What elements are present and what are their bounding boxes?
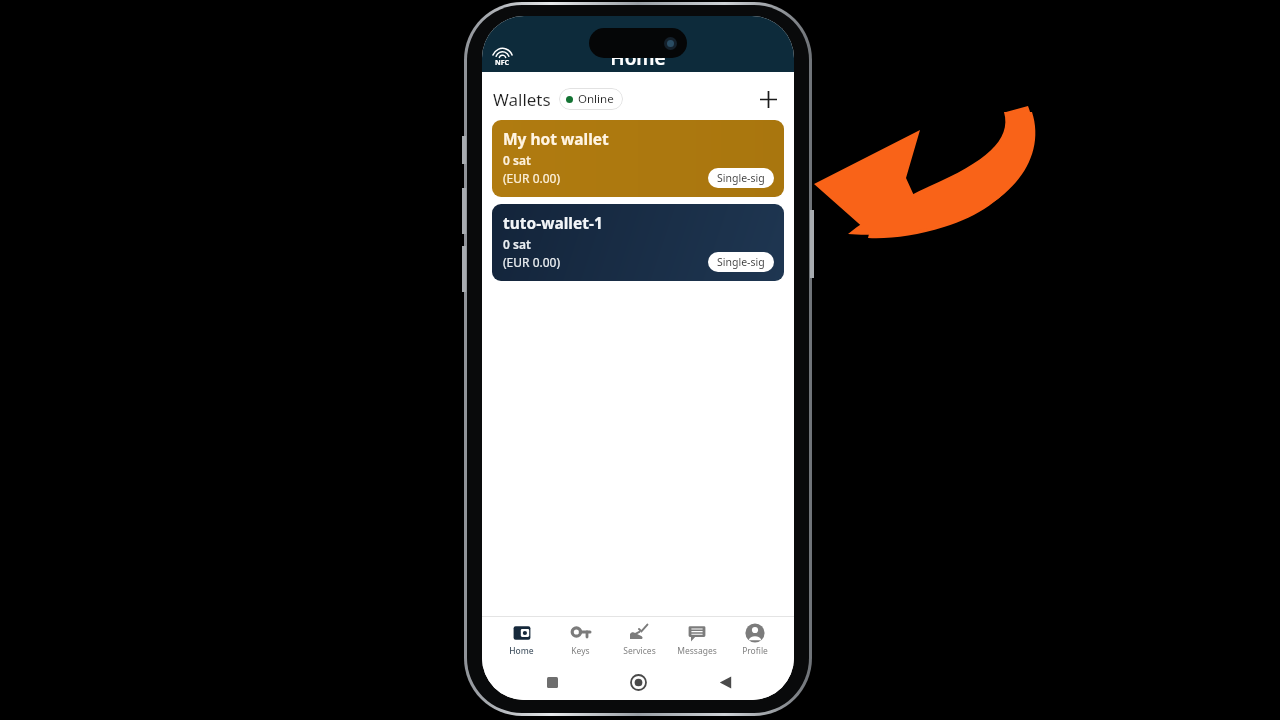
staticText: Keys bbox=[571, 645, 590, 657]
staticText: (EUR 0.00) bbox=[503, 170, 561, 186]
staticText: Profile bbox=[742, 645, 768, 657]
staticText: 0 sat bbox=[503, 236, 531, 252]
staticText: tuto-wallet-1 bbox=[503, 212, 603, 233]
button[interactable]: Profile bbox=[726, 616, 784, 664]
staticText: (EUR 0.00) bbox=[503, 254, 561, 270]
staticText: Services bbox=[623, 645, 656, 657]
button[interactable]: Keys bbox=[551, 616, 610, 664]
button[interactable]: Online bbox=[559, 88, 623, 110]
staticText: Home bbox=[610, 45, 666, 71]
button[interactable]: Back bbox=[708, 665, 742, 699]
staticText: Messages bbox=[677, 645, 717, 657]
staticText: Single-sig bbox=[717, 171, 765, 185]
staticText: 0 sat bbox=[503, 152, 531, 168]
button[interactable]: Home bbox=[492, 616, 551, 664]
button[interactable]: Add wallet bbox=[753, 84, 783, 114]
button[interactable]: Home bbox=[621, 665, 655, 699]
staticText: My hot wallet bbox=[503, 128, 609, 149]
button[interactable]: My hot wallet bbox=[492, 120, 784, 197]
staticText: Single-sig bbox=[717, 255, 765, 269]
button[interactable]: Services bbox=[610, 616, 668, 664]
button[interactable]: Messages bbox=[668, 616, 726, 664]
button[interactable]: Recent apps bbox=[535, 665, 569, 699]
button[interactable]: Single-sig bbox=[708, 168, 774, 188]
button[interactable]: Single-sig bbox=[708, 252, 774, 272]
staticText: Home bbox=[509, 645, 534, 657]
staticText: Online bbox=[578, 91, 614, 107]
staticText: NFC bbox=[495, 58, 510, 68]
button[interactable]: tuto-wallet-1 bbox=[492, 204, 784, 281]
staticText: Wallets bbox=[493, 88, 551, 111]
